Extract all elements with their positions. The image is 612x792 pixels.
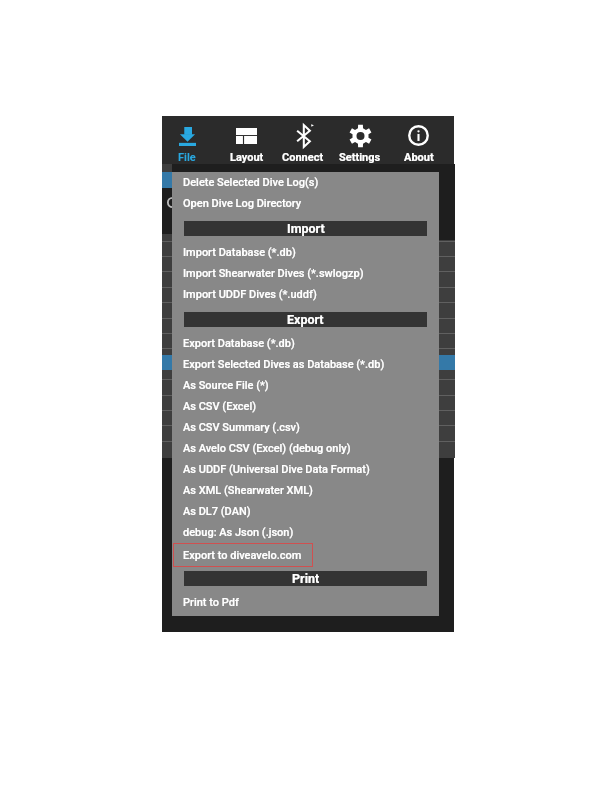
staticText: As CSV (Excel) <box>183 400 257 413</box>
button[interactable]: Export Database (*.db) <box>172 333 439 354</box>
button[interactable]: As Avelo CSV (Excel) (debug only) <box>172 438 439 459</box>
button[interactable]: Import Shearwater Dives (*.swlogzp) <box>172 263 439 284</box>
staticText: As UDDF (Universal Dive Data Format) <box>183 463 370 476</box>
button[interactable]: Layout <box>218 116 276 164</box>
staticText: Delete Selected Dive Log(s) <box>183 176 319 189</box>
other: About <box>408 125 429 146</box>
button[interactable]: As XML (Shearwater XML) <box>172 480 439 501</box>
staticText: As DL7 (DAN) <box>183 505 251 518</box>
button[interactable]: debug: As Json (.json) <box>172 522 439 543</box>
staticText: Layout <box>230 151 264 164</box>
button[interactable]: Export <box>184 312 427 327</box>
staticText: About <box>404 151 434 164</box>
staticText: Print to Pdf <box>183 596 239 609</box>
staticText: Import Shearwater Dives (*.swlogzp) <box>183 267 364 280</box>
button[interactable]: Delete Selected Dive Log(s) <box>172 172 439 193</box>
button[interactable]: Import UDDF Dives (*.uddf) <box>172 284 439 305</box>
staticText: File <box>178 151 196 164</box>
staticText: Export Database (*.db) <box>183 337 295 350</box>
other: Connect <box>294 124 313 148</box>
staticText: Export <box>287 312 324 327</box>
staticText: As XML (Shearwater XML) <box>183 484 313 497</box>
staticText: debug: As Json (.json) <box>183 526 294 539</box>
staticText: Import <box>287 221 325 236</box>
button[interactable]: Import Database (*.db) <box>172 242 439 263</box>
button[interactable]: Export Selected Dives as Database (*.db) <box>172 354 439 375</box>
button[interactable]: Print to Pdf <box>172 592 439 613</box>
staticText: Settings <box>339 151 381 164</box>
button[interactable]: As DL7 (DAN) <box>172 501 439 522</box>
button[interactable]: File <box>158 116 216 164</box>
button[interactable]: As Source File (*) <box>172 375 439 396</box>
button[interactable]: Export to diveavelo.com <box>172 543 439 564</box>
button[interactable]: Open Dive Log Directory <box>172 193 439 214</box>
button[interactable]: Settings <box>331 116 389 164</box>
button[interactable]: Print <box>184 571 427 586</box>
staticText: Import UDDF Dives (*.uddf) <box>183 288 317 301</box>
other: Settings <box>349 125 372 147</box>
button[interactable]: As UDDF (Universal Dive Data Format) <box>172 459 439 480</box>
button[interactable]: As CSV Summary (.csv) <box>172 417 439 438</box>
staticText: Import Database (*.db) <box>183 246 296 259</box>
button[interactable]: As CSV (Excel) <box>172 396 439 417</box>
other: Layout <box>236 128 257 144</box>
staticText: Export to diveavelo.com <box>183 549 302 562</box>
staticText: Connect <box>282 151 324 164</box>
button[interactable]: Connect <box>274 116 332 164</box>
staticText: Open Dive Log Directory <box>183 197 302 210</box>
staticText: As Avelo CSV (Excel) (debug only) <box>183 442 351 455</box>
button[interactable]: About <box>390 116 448 164</box>
staticText: As Source File (*) <box>183 379 269 392</box>
staticText: Export Selected Dives as Database (*.db) <box>183 358 385 371</box>
staticText: Print <box>292 571 320 586</box>
button[interactable]: Import <box>184 221 427 236</box>
other: File <box>179 127 196 146</box>
staticText: As CSV Summary (.csv) <box>183 421 300 434</box>
